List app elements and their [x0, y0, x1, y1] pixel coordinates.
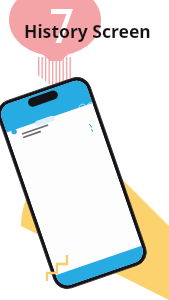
button[interactable]: History Screen promotional graphic [0, 0, 169, 300]
